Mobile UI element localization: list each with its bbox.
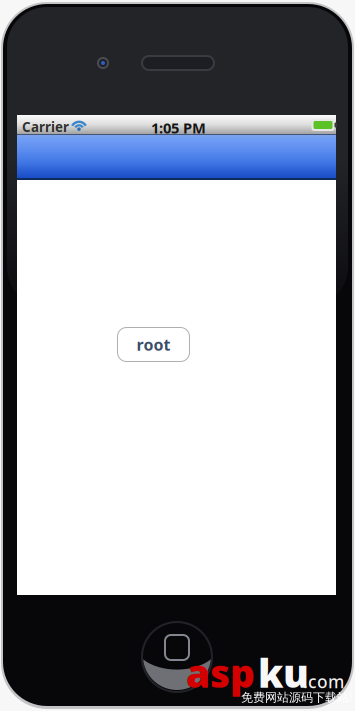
staticText: Carrier — [22, 118, 69, 136]
staticText: root — [136, 334, 170, 355]
staticText: .com — [303, 670, 344, 693]
staticText: asp — [186, 647, 255, 698]
staticText: ku — [258, 647, 309, 698]
button[interactable]: root — [117, 327, 189, 361]
staticText: 1:05 PM — [151, 118, 206, 137]
staticText: 免费网站源码下载站! — [241, 689, 352, 705]
